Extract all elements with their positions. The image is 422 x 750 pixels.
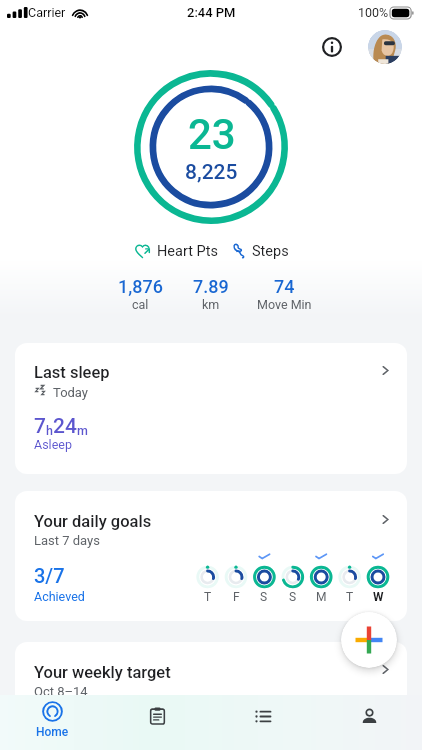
staticText: 8,225 [185, 160, 238, 185]
staticText: 3/7 [34, 564, 65, 587]
staticText: Oct 8–14 [34, 684, 88, 699]
button[interactable]: Your weekly target [15, 642, 407, 750]
staticText: 23 [188, 110, 236, 159]
button[interactable]: Journal [105, 695, 210, 750]
staticText: Heart Pts [157, 243, 219, 260]
staticText: 100% [358, 5, 389, 20]
staticText: Move Min [257, 297, 312, 312]
staticText: km [202, 297, 220, 312]
staticText: Your weekly target [34, 663, 171, 682]
staticText: Steps [252, 243, 289, 260]
staticText: S [289, 590, 297, 604]
staticText: 7.89 [193, 276, 229, 297]
button[interactable]: Profile [368, 30, 402, 64]
button[interactable]: Add [341, 612, 397, 668]
staticText: m [77, 423, 88, 438]
button[interactable]: Your daily goals [15, 491, 407, 621]
staticText: T [204, 590, 212, 604]
staticText: Home [36, 725, 69, 739]
staticText: Asleep [34, 437, 72, 452]
staticText: T [346, 590, 354, 604]
staticText: S [260, 590, 268, 604]
staticText: Today [53, 385, 89, 400]
staticText: Last 7 days [34, 533, 100, 548]
staticText: Achieved [34, 589, 85, 604]
staticText: Last sleep [34, 363, 110, 382]
staticText: h [46, 423, 53, 438]
staticText: 2:44 PM [187, 5, 236, 20]
staticText: F [233, 590, 240, 604]
staticText: 74 [274, 276, 295, 297]
staticText: 24 [53, 414, 77, 439]
button[interactable]: Profile [316, 695, 422, 750]
button[interactable]: Home [0, 695, 105, 750]
staticText: M [316, 590, 327, 604]
button[interactable]: Info [318, 33, 346, 61]
staticText: W [373, 590, 384, 604]
staticText: Carrier [28, 5, 66, 20]
staticText: Your daily goals [34, 512, 152, 531]
button[interactable]: Browse [210, 695, 316, 750]
button[interactable]: Last sleep [15, 343, 407, 474]
staticText: cal [132, 297, 149, 312]
staticText: 7 [34, 414, 46, 439]
staticText: 1,876 [118, 276, 163, 297]
